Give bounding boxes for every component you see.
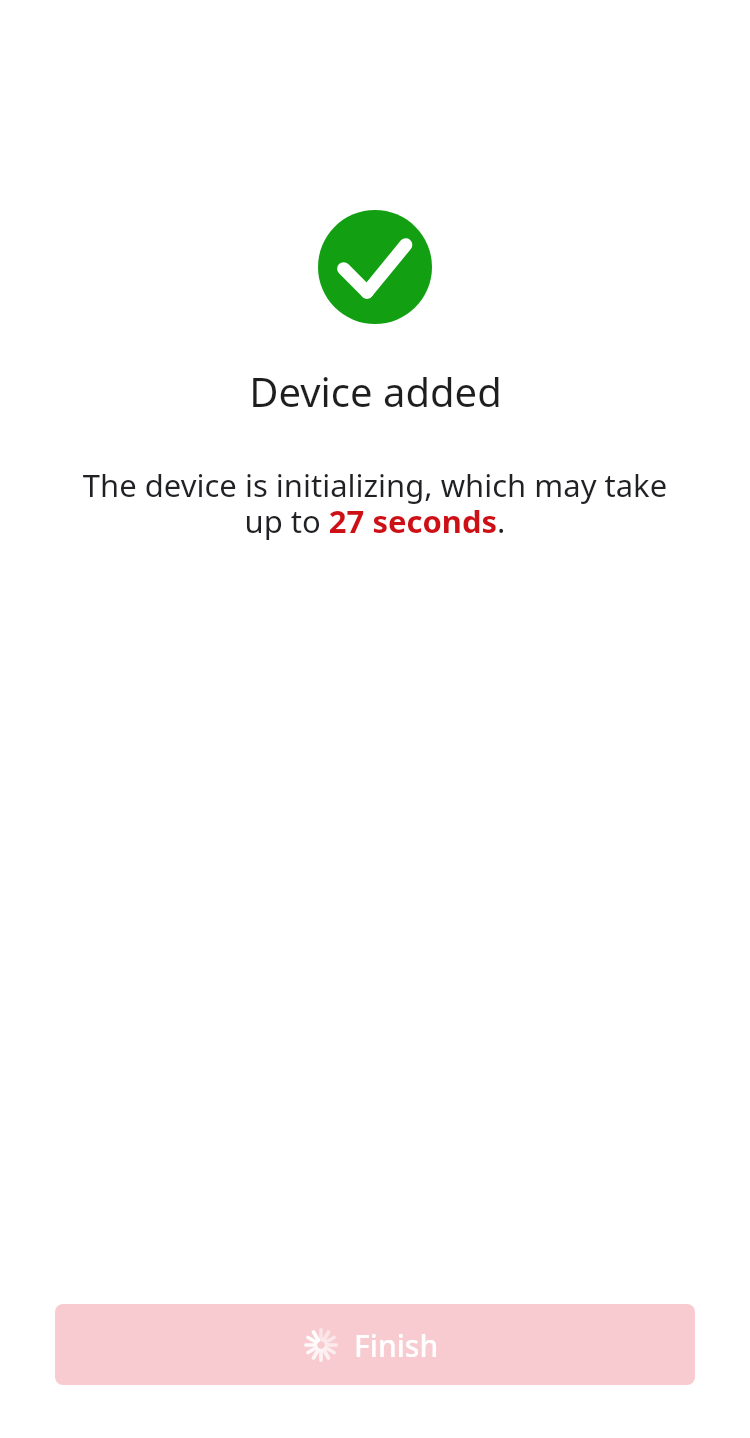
staticText: Device added [249, 364, 502, 418]
staticText: The device is initializing, which may ta… [62, 464, 688, 542]
button[interactable]: Loading [55, 1304, 695, 1385]
staticText: Finish [354, 1325, 439, 1365]
other: Loading [305, 1329, 337, 1361]
